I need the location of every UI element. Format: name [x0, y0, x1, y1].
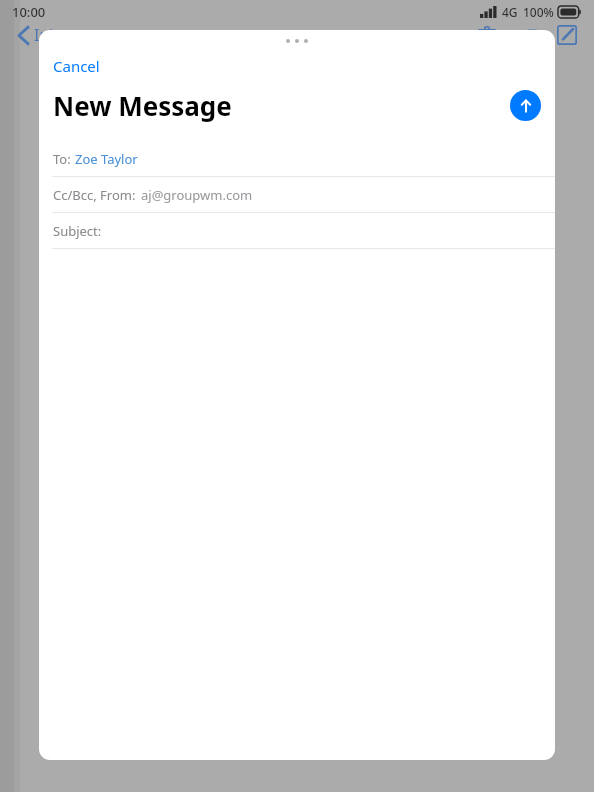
staticText: Subject:: [53, 222, 102, 240]
button[interactable]: Inbox: [14, 22, 81, 48]
button[interactable]: Compose: [550, 20, 584, 50]
staticText: Cc/Bcc, From:: [53, 186, 139, 204]
staticText: To:: [53, 150, 75, 168]
button[interactable]: Delete: [470, 20, 504, 50]
button[interactable]: Send: [510, 90, 541, 121]
staticText: Zoe Taylor: [75, 150, 138, 168]
staticText: 100%: [523, 4, 554, 20]
staticText: Inbox: [34, 24, 77, 46]
button[interactable]: Move to folder: [510, 20, 544, 50]
button[interactable]: Cancel: [48, 52, 105, 80]
staticText: Cancel: [53, 56, 100, 76]
button[interactable]: Cc/Bcc, From:: [39, 177, 555, 212]
staticText: 10:00: [12, 3, 46, 21]
staticText: New Message: [53, 88, 232, 123]
button[interactable]: To:: [39, 141, 555, 176]
staticText: 4G: [502, 4, 518, 20]
button[interactable]: Subject:: [39, 213, 555, 248]
staticText: aj@groupwm.com: [141, 186, 253, 204]
